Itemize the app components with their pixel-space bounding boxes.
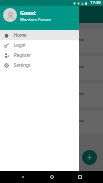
button[interactable]: Home xyxy=(0,30,79,40)
staticText: Warriors Forum xyxy=(20,17,51,23)
staticText: Home xyxy=(14,32,27,38)
staticText: Register xyxy=(14,52,32,58)
button[interactable]: Open navigation drawer xyxy=(4,10,14,20)
button[interactable]: Home xyxy=(47,172,57,182)
staticText: 17:39 xyxy=(90,0,101,6)
staticText: Login xyxy=(14,42,26,48)
staticText: Guest xyxy=(20,9,36,16)
button[interactable]: Settings xyxy=(0,60,79,70)
button[interactable]: Recent apps xyxy=(75,172,85,182)
button[interactable]: Register xyxy=(0,50,79,60)
staticText: Settings xyxy=(14,62,31,68)
button[interactable]: Compose xyxy=(82,150,97,165)
button[interactable]: Back xyxy=(18,172,28,182)
button[interactable]: Login xyxy=(0,40,79,50)
button[interactable]: Guest xyxy=(0,0,79,30)
